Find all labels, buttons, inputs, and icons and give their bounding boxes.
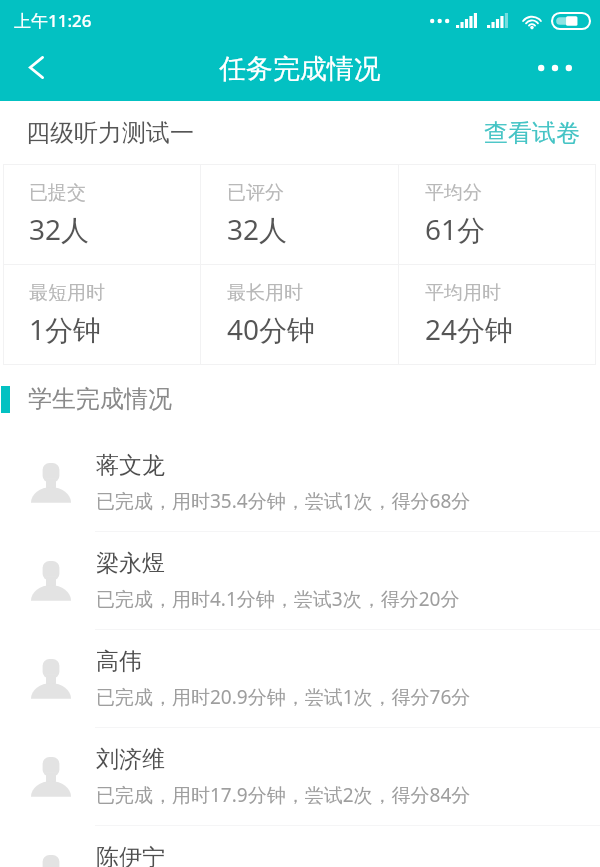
button[interactable]: 蒋文龙 (0, 433, 600, 531)
staticText: 平均分 (425, 181, 482, 205)
staticText: 刘济维 (96, 745, 165, 774)
staticText: 已完成，用时17.9分钟，尝试2次，得分84分 (96, 782, 471, 808)
staticText: 任务完成情况 (219, 52, 381, 86)
staticText: 上午11:26 (14, 9, 92, 32)
staticText: 最长用时 (227, 281, 303, 305)
staticText: 平均用时 (425, 281, 501, 305)
staticText: 已评分 (227, 181, 284, 205)
staticText: 已完成，用时20.9分钟，尝试1次，得分76分 (96, 684, 471, 710)
staticText: 梁永煜 (96, 549, 165, 578)
button[interactable]: More options (530, 40, 600, 101)
staticText: 32人 (29, 210, 90, 248)
staticText: 32人 (227, 210, 288, 248)
staticText: 蒋文龙 (96, 451, 165, 480)
staticText: 查看试卷 (484, 118, 580, 148)
staticText: 最短用时 (29, 281, 105, 305)
staticText: 已完成，用时4.1分钟，尝试3次，得分20分 (96, 586, 460, 612)
button[interactable]: 梁永煜 (0, 531, 600, 629)
staticText: 40分钟 (227, 310, 316, 348)
button[interactable]: 高伟 (0, 629, 600, 727)
staticText: 已提交 (29, 181, 86, 205)
staticText: 1分钟 (29, 310, 102, 348)
button[interactable]: 陈伊宁 (0, 825, 600, 867)
button[interactable]: 查看试卷 (464, 108, 600, 158)
staticText: 已完成，用时35.4分钟，尝试1次，得分68分 (96, 488, 471, 514)
staticText: 61分 (425, 210, 486, 248)
staticText: 四级听力测试一 (26, 118, 194, 148)
staticText: 24分钟 (425, 310, 514, 348)
button[interactable]: Back (0, 40, 70, 101)
staticText: 高伟 (96, 647, 142, 676)
staticText: 陈伊宁 (96, 843, 165, 867)
button[interactable]: 刘济维 (0, 727, 600, 825)
staticText: 学生完成情况 (28, 384, 172, 414)
